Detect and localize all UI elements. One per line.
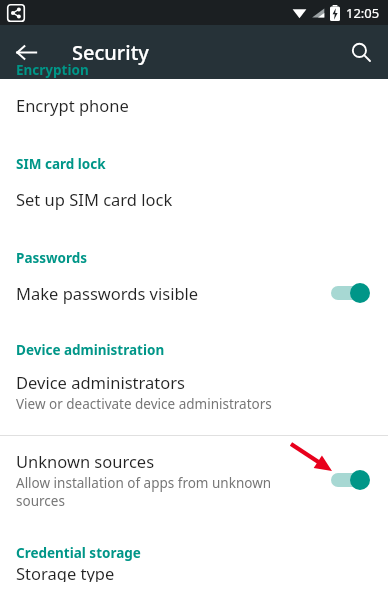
button[interactable]: Storage type	[0, 562, 388, 582]
button[interactable]: Make passwords visible	[0, 267, 388, 319]
staticText: Make passwords visible	[16, 282, 330, 304]
button[interactable]: Toggle	[330, 281, 370, 305]
button[interactable]: Encrypt phone	[0, 79, 388, 131]
button[interactable]: Search	[340, 31, 382, 73]
button[interactable]: Unknown sources	[0, 436, 388, 522]
staticText: Unknown sources	[16, 450, 155, 472]
staticText: Credential storage	[16, 544, 141, 562]
staticText: View or deactivate device administrators	[16, 395, 272, 413]
button[interactable]: Back	[6, 32, 46, 72]
staticText: Set up SIM card lock	[16, 188, 173, 210]
button[interactable]: Toggle	[330, 468, 370, 492]
staticText: SIM card lock	[16, 155, 106, 173]
button[interactable]: Device administrators	[0, 359, 388, 421]
staticText: Device administrators	[16, 371, 185, 393]
staticText: Device administration	[16, 341, 165, 359]
staticText: Passwords	[16, 249, 88, 267]
button[interactable]: Set up SIM card lock	[0, 173, 388, 225]
staticText: Encryption	[16, 61, 89, 79]
staticText: Encrypt phone	[16, 94, 129, 116]
staticText: Allow installation of apps from unknown …	[16, 474, 272, 510]
staticText: Storage type	[16, 562, 115, 582]
staticText: Security	[72, 39, 149, 66]
staticText: 12:05	[346, 4, 380, 22]
